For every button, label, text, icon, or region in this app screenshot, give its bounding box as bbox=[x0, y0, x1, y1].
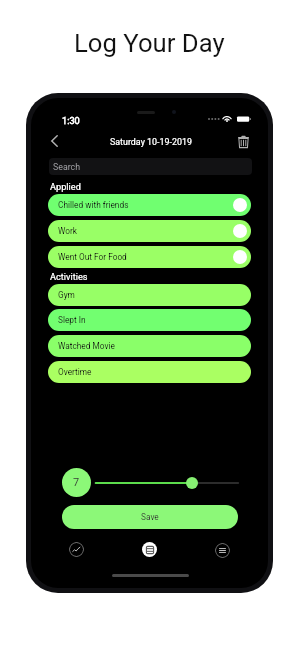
button[interactable]: Intensity slider bbox=[93, 475, 241, 491]
staticText: Saturday 10-19-2019 bbox=[110, 137, 192, 147]
staticText: 7 bbox=[73, 476, 80, 489]
staticText: Save bbox=[141, 512, 159, 522]
staticText: Overtime bbox=[58, 367, 92, 377]
button[interactable]: Search bbox=[49, 158, 252, 175]
staticText: Activities bbox=[50, 271, 88, 282]
staticText: Search bbox=[53, 162, 81, 172]
staticText: Work bbox=[58, 226, 77, 236]
staticText: Chilled with friends bbox=[58, 200, 129, 210]
staticText: Slept In bbox=[58, 315, 86, 325]
staticText: Gym bbox=[58, 290, 75, 300]
staticText: Watched Movie bbox=[58, 341, 115, 351]
button[interactable]: Overtime bbox=[48, 361, 251, 383]
button[interactable]: Delete bbox=[232, 130, 254, 152]
button[interactable]: Trends bbox=[69, 542, 84, 557]
staticText: Went Out For Food bbox=[58, 252, 127, 262]
button[interactable]: Went Out For Food bbox=[48, 246, 251, 268]
button[interactable]: Menu bbox=[215, 543, 230, 558]
button[interactable]: Slept In bbox=[48, 309, 251, 331]
button[interactable]: Gym bbox=[48, 284, 251, 306]
staticText: 1:30 bbox=[62, 115, 80, 126]
button[interactable]: Save bbox=[62, 505, 238, 529]
button[interactable]: Work bbox=[48, 220, 251, 242]
button[interactable]: Watched Movie bbox=[48, 335, 251, 357]
button[interactable]: 7 bbox=[62, 468, 91, 497]
staticText: Applied bbox=[50, 181, 81, 192]
button[interactable]: Chilled with friends bbox=[48, 194, 251, 216]
button[interactable]: Back bbox=[43, 130, 65, 152]
staticText: Log Your Day bbox=[74, 28, 225, 58]
button[interactable]: Log bbox=[142, 542, 157, 557]
